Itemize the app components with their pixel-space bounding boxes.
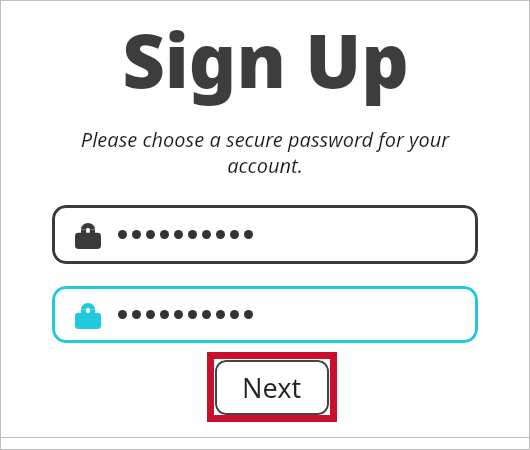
other: Confirm password field lock (75, 294, 101, 323)
staticText: Please choose a secure password for your… (65, 126, 465, 179)
button[interactable]: Next (215, 360, 329, 415)
button[interactable] (52, 205, 478, 264)
button[interactable] (52, 286, 478, 343)
other: Password field lock (75, 214, 101, 243)
staticText: Sign Up (122, 9, 409, 110)
staticText: Next (242, 369, 302, 406)
